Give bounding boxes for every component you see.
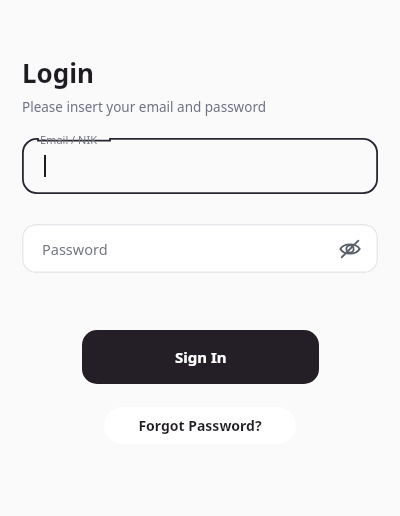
button[interactable]: Sign In bbox=[82, 330, 319, 384]
staticText: Login bbox=[22, 55, 94, 90]
button[interactable]: Show password bbox=[334, 233, 366, 265]
staticText: Forgot Password? bbox=[138, 416, 262, 435]
staticText: Password bbox=[42, 239, 108, 259]
staticText: Email / NIK bbox=[40, 132, 97, 147]
button[interactable]: Email / NIK bbox=[22, 138, 378, 194]
button[interactable]: Forgot Password? bbox=[104, 407, 296, 444]
button[interactable]: Password bbox=[22, 224, 378, 273]
staticText: Please insert your email and password bbox=[22, 98, 266, 116]
staticText: Sign In bbox=[175, 347, 227, 367]
